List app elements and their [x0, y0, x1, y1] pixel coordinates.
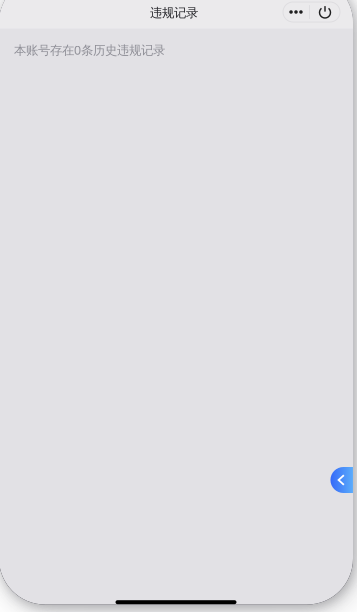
staticText: 本账号存在0条历史违规记录 — [14, 41, 165, 58]
button[interactable]: Close mini program — [310, 2, 340, 22]
staticText: 违规记录 — [150, 5, 198, 21]
button[interactable]: More options — [283, 2, 309, 22]
button[interactable]: Back — [330, 467, 353, 493]
